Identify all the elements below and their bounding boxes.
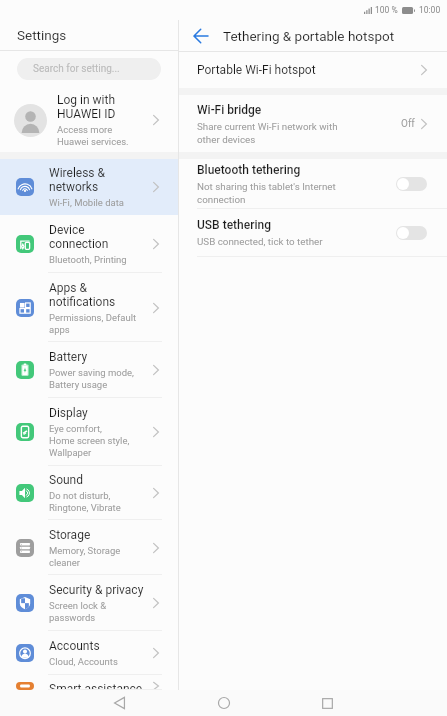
button[interactable]: Storage — [0, 520, 178, 575]
staticText: Apps & notifications — [49, 281, 116, 309]
staticText: Portable Wi-Fi hotspot — [197, 63, 421, 77]
button[interactable]: Accounts — [0, 631, 178, 675]
button[interactable]: Portable Wi-Fi hotspot — [179, 52, 447, 88]
button[interactable]: Toggle off — [396, 177, 427, 191]
button[interactable]: Smart assistance — [0, 675, 178, 690]
button[interactable]: Sound — [0, 466, 178, 520]
staticText: Accounts — [49, 639, 100, 653]
button[interactable]: USB tethering — [179, 209, 447, 256]
button[interactable]: Device connection — [0, 215, 178, 273]
button[interactable]: Wi-Fi bridge — [179, 95, 447, 152]
staticText: Wi-Fi, Mobile data — [49, 197, 125, 208]
button[interactable]: Log in with HUAWEI ID — [0, 88, 178, 152]
staticText: Permissions, Default apps — [49, 312, 137, 335]
staticText: Screen lock & passwords — [49, 600, 107, 623]
staticText: Sound — [49, 473, 83, 487]
staticText: Log in with HUAWEI ID — [57, 93, 116, 121]
staticText: USB tethering — [197, 218, 271, 232]
staticText: Security & privacy — [49, 583, 144, 597]
staticText: Wi-Fi bridge — [197, 103, 262, 117]
button[interactable]: Back — [190, 25, 212, 47]
staticText: Settings — [17, 27, 67, 43]
staticText: Share current Wi-Fi network with other d… — [197, 121, 338, 145]
staticText: Search for setting... — [33, 63, 120, 75]
button[interactable]: Display — [0, 398, 178, 466]
staticText: Display — [49, 406, 88, 420]
staticText: Do not disturb, Ringtone, Vibrate — [49, 490, 121, 513]
staticText: Not sharing this tablet's Internet conne… — [197, 181, 336, 205]
button[interactable]: Search for setting... — [17, 58, 161, 80]
button[interactable]: Recents — [309, 690, 345, 716]
button[interactable]: Home — [206, 690, 242, 716]
button[interactable]: Back — [101, 690, 137, 716]
button[interactable]: Battery — [0, 342, 178, 398]
staticText: Tethering & portable hotspot — [223, 28, 395, 44]
button[interactable]: Toggle off — [396, 226, 427, 240]
button[interactable]: Wireless & networks — [0, 159, 178, 215]
button[interactable]: Bluetooth tethering — [179, 159, 447, 208]
staticText: Smart assistance — [49, 682, 143, 690]
button[interactable]: Security & privacy — [0, 575, 178, 631]
staticText: Power saving mode, Battery usage — [49, 367, 134, 390]
staticText: Bluetooth, Printing — [49, 254, 127, 265]
staticText: 10:00 — [419, 5, 441, 15]
staticText: Bluetooth tethering — [197, 163, 301, 177]
staticText: Cloud, Accounts — [49, 656, 118, 667]
staticText: Eye comfort, Home screen style, Wallpape… — [49, 423, 130, 458]
staticText: Off — [401, 118, 415, 130]
staticText: Storage — [49, 528, 91, 542]
staticText: Access more Huawei services. — [57, 124, 129, 147]
staticText: 100 % — [375, 5, 398, 15]
staticText: Memory, Storage cleaner — [49, 545, 121, 568]
staticText: Battery — [49, 350, 88, 364]
staticText: USB connected, tick to tether — [197, 236, 323, 247]
staticText: Device connection — [49, 223, 109, 251]
staticText: Wireless & networks — [49, 166, 105, 194]
button[interactable]: Apps & notifications — [0, 273, 178, 342]
